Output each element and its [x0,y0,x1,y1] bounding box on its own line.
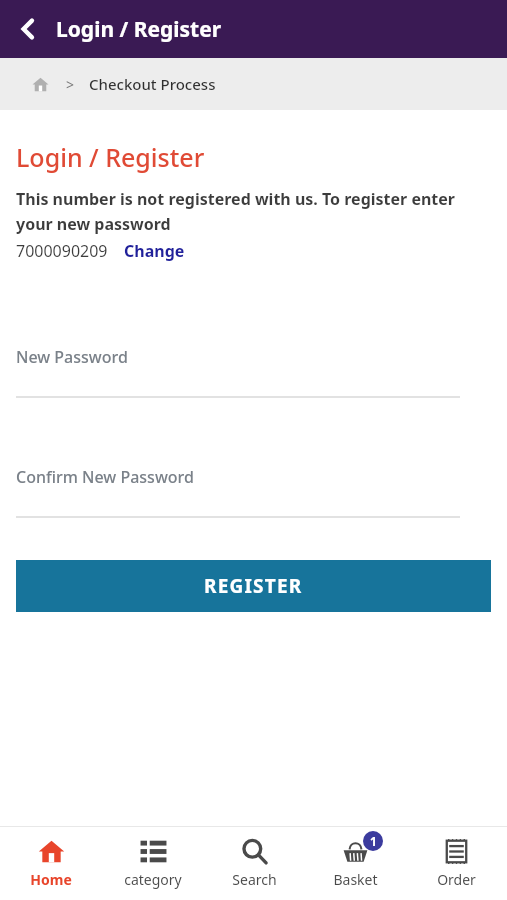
button[interactable]: Order [406,827,507,900]
button[interactable]: REGISTER [16,560,491,612]
staticText: Login / Register [16,140,205,174]
staticText: New Password [16,346,128,368]
staticText: Confirm New Password [16,466,194,488]
staticText: 1 [370,833,377,849]
button[interactable]: Home [28,72,52,96]
staticText: category [124,870,182,889]
button[interactable]: category [102,827,204,900]
button[interactable]: Change [124,240,185,262]
staticText: Checkout Process [89,74,216,94]
staticText: 7000090209 [16,240,108,262]
button[interactable]: New Password [16,346,491,398]
staticText: > [66,75,75,94]
button[interactable]: Confirm New Password [16,466,491,518]
staticText: Search [232,870,277,889]
staticText: Change [124,240,185,262]
button[interactable]: Back [0,0,56,58]
staticText: Order [437,870,476,889]
button[interactable]: 1 [305,827,406,900]
staticText: Home [30,870,72,889]
button[interactable]: Search [204,827,305,900]
staticText: This number is not registered with us. T… [16,188,491,234]
staticText: Basket [333,870,378,889]
button[interactable]: Home [0,827,102,900]
staticText: Login / Register [56,15,222,44]
staticText: REGISTER [204,573,303,599]
